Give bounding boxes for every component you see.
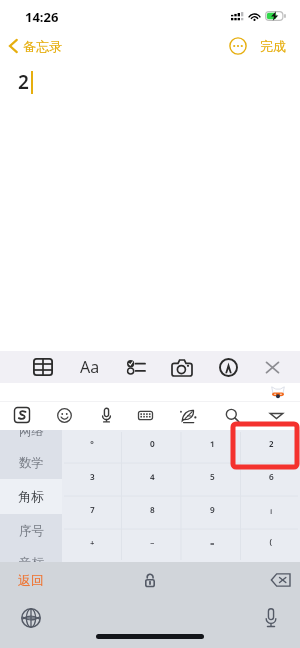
- staticText: ⁺: [90, 537, 95, 555]
- staticText: 2: [18, 69, 29, 95]
- staticText: 角标: [18, 488, 44, 504]
- button[interactable]: Sogou input: [9, 402, 35, 428]
- button[interactable]: 返回: [6, 562, 56, 597]
- button[interactable]: Sogou assistant: [271, 386, 285, 400]
- button[interactable]: More options: [227, 35, 249, 57]
- button[interactable]: Table: [29, 353, 57, 381]
- button[interactable]: ⁸: [122, 496, 182, 529]
- button[interactable]: ⁺: [62, 529, 122, 562]
- button[interactable]: 数学: [0, 448, 62, 478]
- button[interactable]: ˚: [62, 430, 122, 463]
- staticText: ⁸: [150, 504, 155, 522]
- button[interactable]: ⁻: [122, 529, 182, 562]
- staticText: 音标: [19, 555, 44, 562]
- button[interactable]: Backspace: [263, 563, 297, 597]
- staticText: ²: [269, 438, 274, 456]
- staticText: Aa: [80, 356, 100, 378]
- button[interactable]: Aa: [76, 353, 104, 381]
- staticText: 数学: [19, 455, 44, 471]
- staticText: ⁱ: [270, 504, 273, 522]
- button[interactable]: Checklist: [122, 353, 150, 381]
- button[interactable]: Camera: [168, 353, 196, 381]
- button[interactable]: ⁼: [182, 529, 242, 562]
- staticText: ⁷: [90, 504, 95, 522]
- button[interactable]: ⁷: [62, 496, 122, 529]
- button[interactable]: Lock keyboard: [133, 563, 167, 597]
- button[interactable]: Search: [219, 402, 245, 428]
- button[interactable]: ⁵: [182, 463, 242, 496]
- staticText: ⁰: [150, 438, 155, 456]
- button[interactable]: ⁱ: [242, 496, 300, 529]
- staticText: ¹: [210, 438, 215, 456]
- staticText: 返回: [18, 572, 44, 588]
- button[interactable]: Switch language: [14, 601, 47, 634]
- button[interactable]: Collapse keyboard: [263, 402, 289, 428]
- button[interactable]: ²: [242, 430, 300, 463]
- staticText: ⁶: [269, 471, 274, 489]
- staticText: 备忘录: [23, 38, 62, 54]
- button[interactable]: 网络: [0, 430, 62, 446]
- button[interactable]: Voice input: [254, 601, 287, 634]
- button[interactable]: ¹: [182, 430, 242, 463]
- staticText: 14:26: [25, 8, 59, 26]
- staticText: ⁵: [210, 471, 215, 489]
- button[interactable]: ⁹: [182, 496, 242, 529]
- button[interactable]: 序号: [0, 516, 62, 546]
- button[interactable]: Handwriting: [175, 402, 201, 428]
- button[interactable]: Markup: [214, 353, 242, 381]
- staticText: ˚: [90, 438, 95, 456]
- button[interactable]: Voice input: [93, 402, 119, 428]
- staticText: 完成: [260, 38, 286, 54]
- button[interactable]: 音标: [0, 548, 62, 562]
- staticText: ⁼: [210, 537, 215, 555]
- staticText: ⁽: [269, 537, 273, 555]
- staticText: 网络: [19, 430, 44, 439]
- button[interactable]: Close: [258, 353, 286, 381]
- button[interactable]: Keyboard: [132, 402, 158, 428]
- staticText: 序号: [19, 523, 44, 539]
- button[interactable]: ⁽: [242, 529, 300, 562]
- button[interactable]: ⁴: [122, 463, 182, 496]
- staticText: ³: [90, 471, 95, 489]
- button[interactable]: ⁰: [122, 430, 182, 463]
- staticText: ⁻: [150, 537, 155, 555]
- button[interactable]: Emoji: [51, 402, 77, 428]
- button[interactable]: ³: [62, 463, 122, 496]
- button[interactable]: 完成: [257, 34, 289, 58]
- staticText: ⁴: [150, 471, 155, 489]
- button[interactable]: 备忘录: [8, 38, 62, 54]
- staticText: ⁹: [210, 504, 215, 522]
- button[interactable]: 角标: [0, 481, 62, 511]
- button[interactable]: ⁶: [242, 463, 300, 496]
